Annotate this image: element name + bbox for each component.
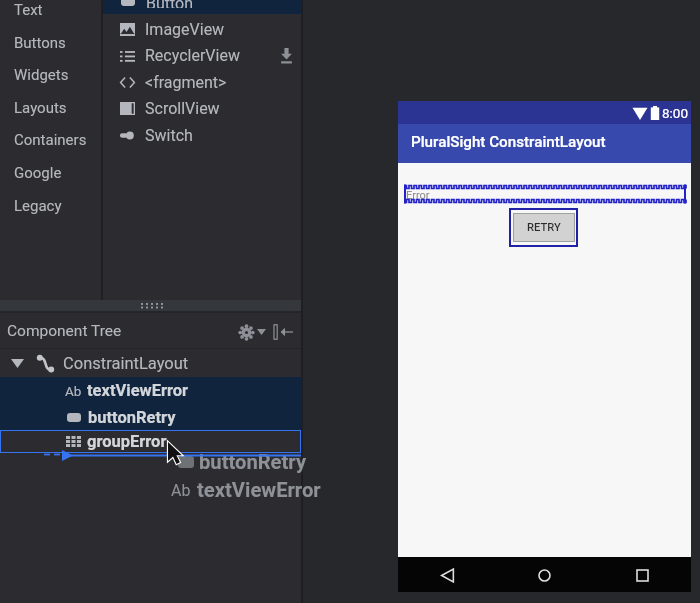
- staticText: Component Tree: [7, 322, 122, 340]
- button[interactable]: Ab: [0, 377, 301, 404]
- button[interactable]: Layouts: [0, 92, 101, 124]
- button[interactable]: Switch: [103, 122, 301, 148]
- staticText: Containers: [14, 131, 87, 149]
- button[interactable]: Buttons: [0, 27, 101, 59]
- staticText: 8:00: [662, 105, 689, 121]
- staticText: RecyclerView: [145, 46, 240, 65]
- staticText: textViewError: [197, 478, 321, 502]
- staticText: <fragment>: [145, 73, 227, 92]
- button[interactable]: RecyclerView: [103, 42, 301, 68]
- staticText: Error: [406, 189, 430, 202]
- button[interactable]: Collapse panel: [274, 323, 294, 341]
- button[interactable]: Back: [434, 562, 460, 588]
- button[interactable]: Download: [279, 47, 294, 64]
- button[interactable]: RETRY: [509, 208, 578, 247]
- staticText: Switch: [145, 126, 193, 145]
- button[interactable]: ScrollView: [103, 95, 301, 121]
- staticText: Ab: [171, 481, 191, 500]
- staticText: Buttons: [14, 34, 66, 52]
- staticText: textViewError: [87, 381, 189, 400]
- button[interactable]: Settings: [238, 324, 255, 341]
- button[interactable]: groupError: [0, 430, 301, 453]
- button[interactable]: Legacy: [0, 190, 101, 222]
- button[interactable]: ConstraintLayout: [0, 349, 301, 377]
- staticText: ScrollView: [145, 99, 220, 118]
- staticText: ImageView: [145, 20, 225, 39]
- button[interactable]: Google: [0, 157, 101, 189]
- button[interactable]: Button: [103, 0, 301, 14]
- staticText: buttonRetry: [199, 450, 307, 474]
- staticText: Widgets: [14, 66, 69, 84]
- staticText: buttonRetry: [88, 408, 176, 427]
- button[interactable]: Widgets: [0, 59, 101, 91]
- staticText: groupError: [87, 432, 167, 451]
- button[interactable]: Text: [0, 0, 101, 26]
- button[interactable]: Home: [531, 562, 557, 588]
- staticText: Layouts: [14, 99, 67, 117]
- staticText: RETRY: [527, 221, 561, 234]
- staticText: Google: [14, 164, 62, 182]
- staticText: Ab: [65, 383, 82, 399]
- staticText: Text: [14, 1, 43, 19]
- staticText: Button: [146, 0, 194, 8]
- staticText: Legacy: [14, 197, 62, 215]
- staticText: PluralSight ConstraintLayout: [411, 133, 606, 151]
- button[interactable]: Containers: [0, 124, 101, 156]
- button[interactable]: ImageView: [103, 16, 301, 42]
- button[interactable]: Recent apps: [629, 562, 655, 588]
- staticText: ConstraintLayout: [63, 354, 189, 373]
- button[interactable]: <fragment>: [103, 69, 301, 95]
- button[interactable]: buttonRetry: [0, 404, 301, 430]
